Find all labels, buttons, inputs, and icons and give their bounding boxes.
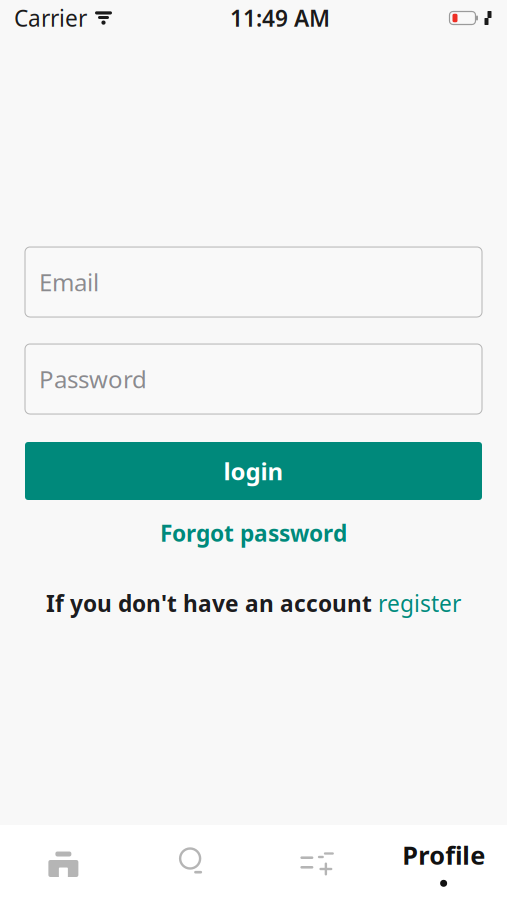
button[interactable]: Profile: [380, 825, 507, 900]
staticText: register: [378, 588, 461, 618]
staticText: Email: [39, 266, 99, 298]
staticText: If you don't have an account: [46, 588, 372, 618]
staticText: Forgot password: [160, 518, 347, 548]
staticText: login: [223, 455, 283, 487]
button[interactable]: Forgot password: [146, 512, 361, 554]
staticText: Carrier: [14, 3, 87, 33]
staticText: Profile: [402, 838, 485, 872]
button[interactable]: Search: [127, 825, 254, 900]
staticText: 11:49 AM: [230, 3, 330, 33]
button[interactable]: Tasks: [253, 825, 380, 900]
button[interactable]: login: [25, 442, 482, 500]
button[interactable]: register: [378, 588, 461, 618]
staticText: Password: [39, 363, 147, 395]
button[interactable]: Home: [0, 825, 127, 900]
